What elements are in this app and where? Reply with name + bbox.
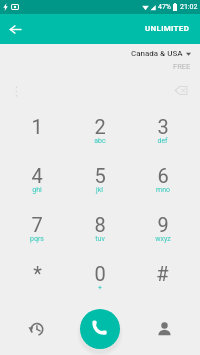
staticText: FREE [173, 62, 191, 71]
button[interactable]: Canada & USA [0, 49, 200, 71]
staticText: mno [156, 186, 170, 194]
button[interactable]: Contacts [151, 316, 177, 342]
staticText: + [98, 284, 102, 292]
button[interactable]: Backspace [172, 81, 190, 99]
staticText: 3 [157, 115, 169, 138]
staticText: 7 [31, 213, 43, 236]
button[interactable]: 4 [6, 161, 68, 210]
staticText: 5 [94, 164, 106, 187]
staticText: 47% [158, 3, 171, 11]
button[interactable]: # [131, 259, 194, 308]
staticText: 6 [157, 164, 169, 187]
staticText: def [157, 137, 168, 145]
button[interactable]: 1 [6, 112, 68, 161]
staticText: pqrs [30, 235, 44, 243]
button[interactable]: Call history [23, 316, 49, 342]
button[interactable]: 2 [68, 112, 131, 161]
staticText: jkl [96, 186, 103, 194]
button[interactable]: 6 [131, 161, 194, 210]
button[interactable]: 8 [68, 210, 131, 259]
staticText: 2 [94, 115, 106, 138]
staticText: 0 [94, 262, 106, 285]
staticText: # [156, 262, 169, 285]
staticText: abc [94, 137, 106, 145]
staticText: 4 [31, 164, 43, 187]
button[interactable]: UNLIMITED [145, 25, 200, 34]
button[interactable]: * [6, 259, 68, 308]
staticText: 1 [31, 115, 43, 138]
staticText: ghi [32, 186, 42, 194]
button[interactable]: Back [2, 16, 28, 42]
button[interactable]: 3 [131, 112, 194, 161]
button[interactable]: 5 [68, 161, 131, 210]
button[interactable]: 9 [131, 210, 194, 259]
staticText: tuv [95, 235, 105, 243]
staticText: Canada & USA [131, 49, 183, 58]
button[interactable]: 0 [68, 259, 131, 308]
button[interactable]: 7 [6, 210, 68, 259]
staticText: 8 [94, 213, 106, 236]
staticText: 21:02 [180, 3, 198, 11]
button[interactable]: Call [80, 309, 120, 349]
staticText: 9 [157, 213, 169, 236]
staticText: * [33, 262, 42, 285]
staticText: wxyz [155, 235, 171, 243]
